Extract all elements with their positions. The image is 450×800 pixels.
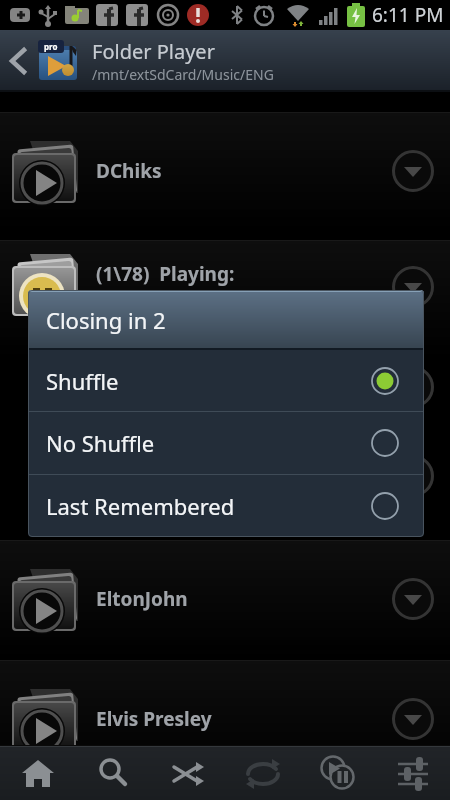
button[interactable] xyxy=(300,747,375,800)
button[interactable] xyxy=(75,747,150,800)
button[interactable]: DChiks xyxy=(0,112,450,230)
button[interactable]: pro xyxy=(0,30,450,92)
button[interactable] xyxy=(0,747,75,800)
button[interactable]: Elvis Presley xyxy=(0,660,450,745)
button[interactable] xyxy=(391,697,435,741)
staticText: 6:11 PM xyxy=(372,2,444,28)
staticText: Folder Player xyxy=(92,38,215,65)
staticText: EltonJohn xyxy=(96,586,188,612)
staticText: (1\78) Playing: xyxy=(96,261,235,287)
button[interactable] xyxy=(391,454,435,498)
staticText: DChiks xyxy=(96,158,162,184)
button[interactable]: EltonJohn xyxy=(0,540,450,658)
button[interactable] xyxy=(375,747,450,800)
staticText: No Shuffle xyxy=(46,428,155,458)
staticText: Shuffle xyxy=(46,366,119,396)
button[interactable]: Shuffle xyxy=(28,350,424,411)
button[interactable]: Last Remembered xyxy=(28,475,424,537)
button[interactable] xyxy=(150,747,225,800)
button[interactable]: (1\78) Playing: xyxy=(0,240,450,358)
staticText: Closing in 2 xyxy=(46,305,166,335)
staticText: Last Remembered xyxy=(46,491,235,521)
button[interactable] xyxy=(391,365,435,409)
button[interactable] xyxy=(225,747,300,800)
staticText: Elvis Presley xyxy=(96,706,212,732)
staticText: /mnt/extSdCard/Music/ENG xyxy=(92,65,274,84)
button[interactable] xyxy=(391,577,435,621)
button[interactable] xyxy=(391,149,435,193)
button[interactable]: No Shuffle xyxy=(28,412,424,474)
staticText: pro xyxy=(44,41,58,52)
button[interactable] xyxy=(391,265,435,309)
